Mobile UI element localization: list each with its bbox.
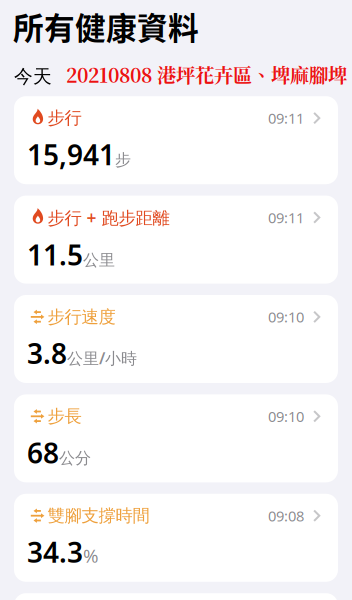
staticText: 步行 <box>47 107 81 129</box>
staticText: 3.8 <box>27 334 67 372</box>
staticText: 34.3 <box>27 533 83 570</box>
button[interactable]: 雙腳支撐時間 <box>14 494 338 582</box>
staticText: 步長 <box>47 406 81 427</box>
staticText: 所有健康資料 <box>13 4 199 48</box>
staticText: 公里 <box>83 250 115 270</box>
staticText: 20210808 港坪花卉區、埤麻腳埤 <box>66 60 347 88</box>
staticText: 09:11 <box>268 208 304 227</box>
staticText: 09:10 <box>268 307 304 327</box>
staticText: 68 <box>27 434 59 471</box>
staticText: 步行速度 <box>47 306 115 328</box>
staticText: 公分 <box>59 448 91 468</box>
button[interactable]: 步行 <box>14 96 338 184</box>
staticText: 今天 <box>14 65 52 88</box>
staticText: 公里/小時 <box>67 347 137 369</box>
staticText: 09:10 <box>268 407 304 426</box>
button[interactable]: 步行速度 <box>14 295 338 383</box>
staticText: 步 <box>115 150 131 170</box>
button[interactable]: 步行 + 跑步距離 <box>14 196 338 284</box>
staticText: 15,941 <box>27 136 115 173</box>
staticText: 步行 + 跑步距離 <box>47 206 169 229</box>
staticText: 09:08 <box>268 506 304 525</box>
staticText: 雙腳支撐時間 <box>47 505 149 526</box>
staticText: 11.5 <box>27 236 83 273</box>
staticText: 09:11 <box>268 108 304 128</box>
button[interactable]: 步長 <box>14 394 338 482</box>
staticText: % <box>83 543 99 568</box>
